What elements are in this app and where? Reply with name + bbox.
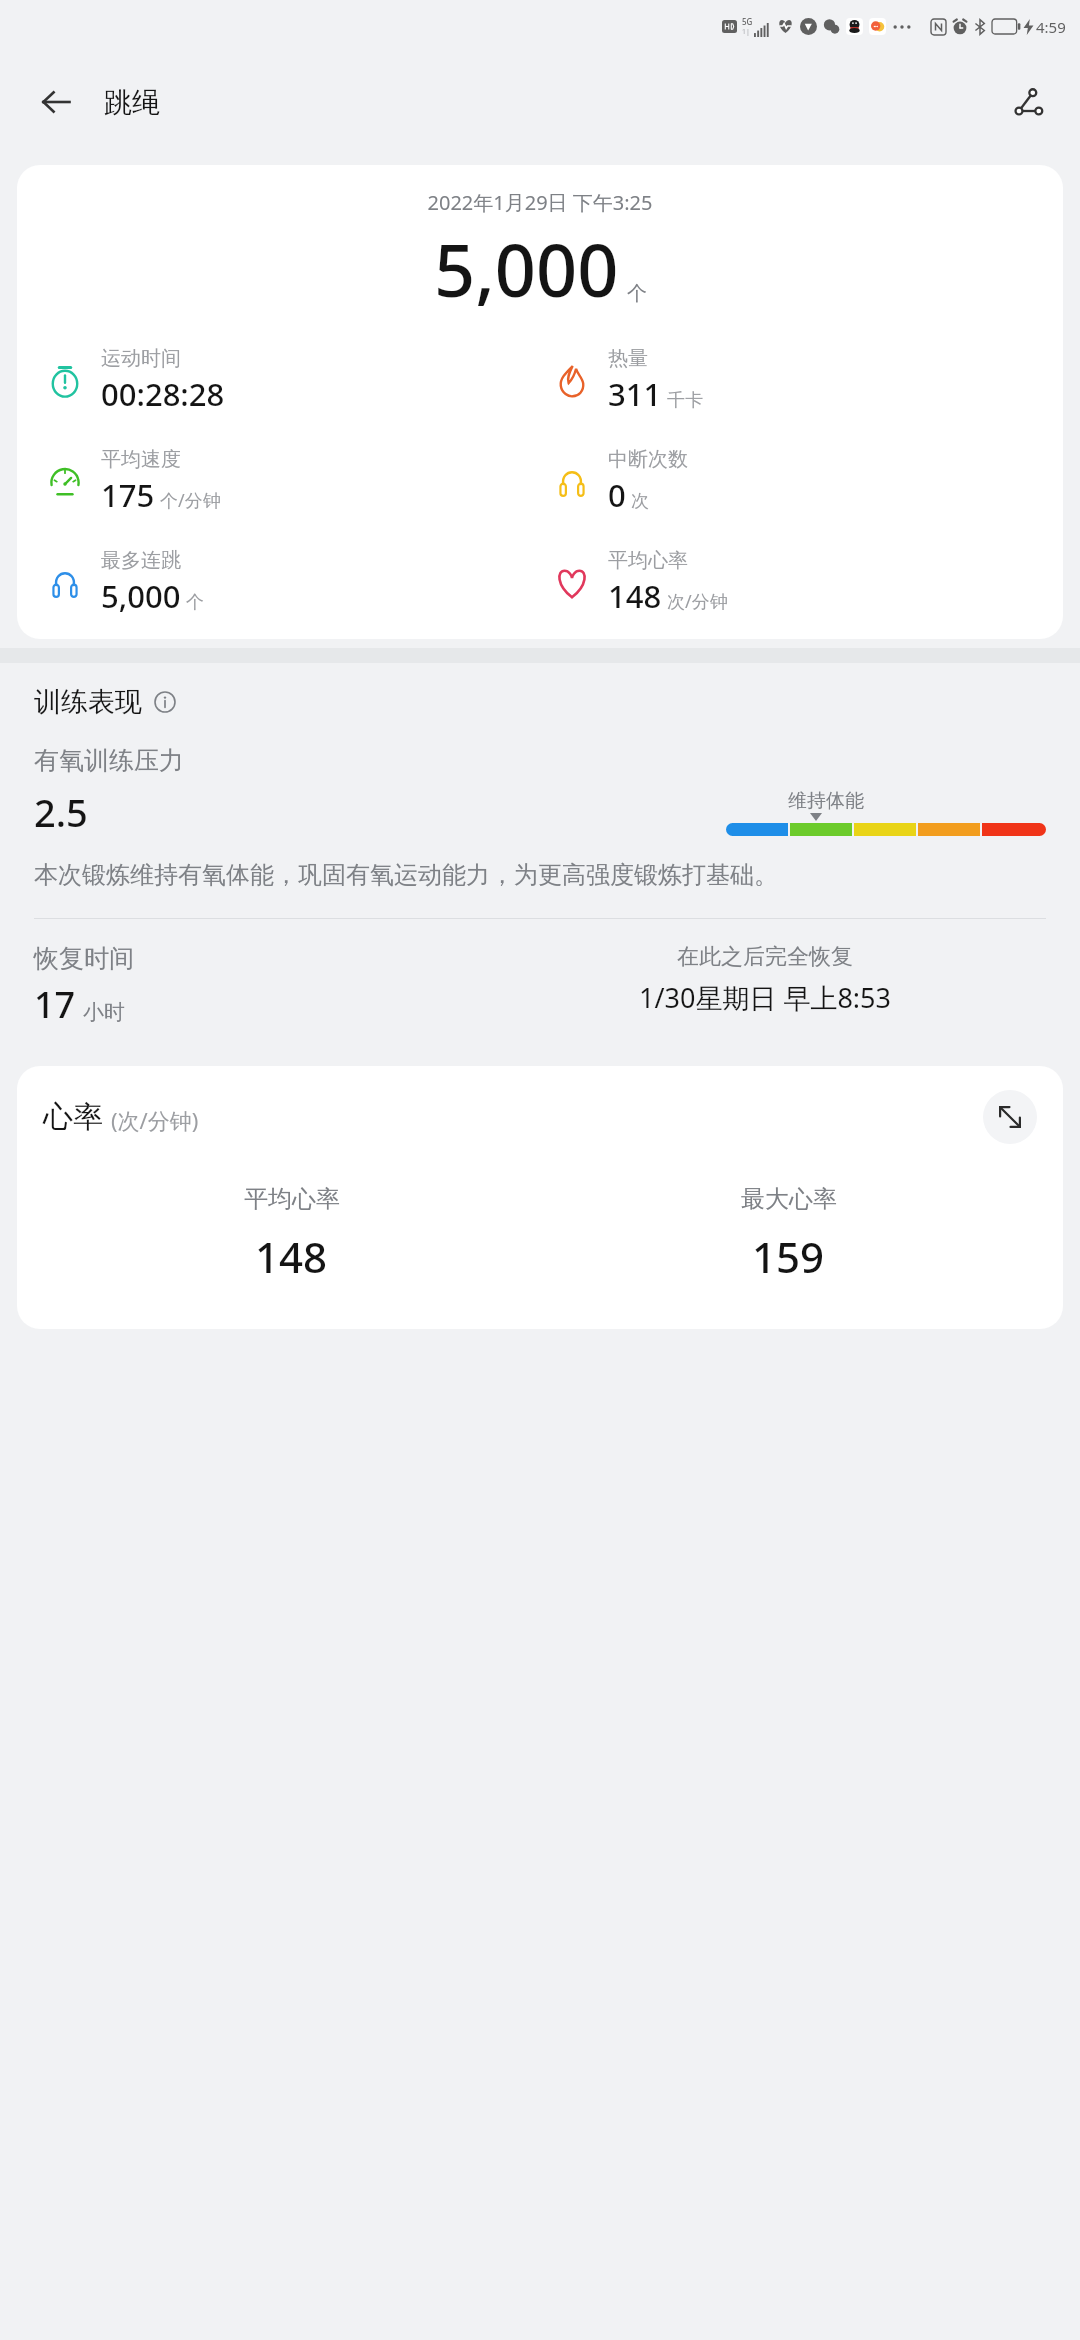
staticText: 4:59 — [1036, 17, 1066, 37]
button[interactable]: Share — [1002, 76, 1054, 128]
staticText: 训练表现 — [34, 685, 142, 719]
button[interactable]: 中断次数 — [550, 447, 1063, 516]
staticText: 次 — [631, 490, 649, 513]
staticText: 2.5 — [34, 786, 88, 838]
staticText: 1| — [742, 27, 750, 37]
button[interactable]: 平均速度 — [43, 447, 540, 516]
staticText: 159 — [752, 1228, 825, 1285]
staticText: 最多连跳 — [101, 548, 181, 573]
staticText: 148 — [255, 1228, 328, 1285]
staticText: 在此之后完全恢复 — [677, 943, 853, 971]
staticText: 5G — [742, 16, 753, 27]
staticText: 148 — [608, 575, 662, 617]
staticText: 311 — [608, 373, 662, 415]
button[interactable]: 最多连跳 — [43, 548, 540, 617]
staticText: 中断次数 — [608, 447, 688, 472]
staticText: 个/分钟 — [160, 488, 221, 513]
staticText: 个 — [186, 591, 204, 614]
staticText: 平均速度 — [101, 447, 181, 472]
button[interactable]: 平均心率 — [550, 548, 1063, 617]
staticText: 维持体能 — [788, 789, 864, 813]
staticText: 00:28:28 — [101, 373, 225, 415]
staticText: 5,000 — [101, 575, 181, 617]
staticText: 175 — [101, 474, 155, 516]
staticText: 1/30星期日 早上8:53 — [639, 979, 891, 1016]
staticText: 有氧训练压力 — [34, 745, 184, 776]
staticText: 恢复时间 — [34, 943, 134, 974]
staticText: 心率 — [43, 1098, 103, 1136]
staticText: 跳绳 — [104, 85, 160, 120]
staticText: (次/分钟) — [111, 1105, 199, 1135]
staticText: 本次锻炼维持有氧体能，巩固有氧运动能力，为更高强度锻炼打基础。 — [34, 860, 778, 890]
staticText: 次/分钟 — [667, 589, 728, 614]
staticText: 运动时间 — [101, 346, 181, 371]
staticText: 平均心率 — [608, 548, 688, 573]
staticText: 5,000 — [434, 220, 619, 318]
staticText: 千卡 — [667, 389, 703, 412]
button[interactable]: 热量 — [550, 346, 1063, 415]
staticText: 最大心率 — [741, 1184, 837, 1214]
button[interactable]: 运动时间 — [43, 346, 540, 415]
button[interactable]: Back — [30, 76, 82, 128]
button[interactable]: Info — [152, 689, 178, 715]
staticText: 热量 — [608, 346, 648, 371]
staticText: 小时 — [83, 999, 125, 1025]
staticText: 17 — [34, 980, 76, 1029]
staticText: 0 — [608, 474, 626, 516]
staticText: 个 — [627, 281, 647, 306]
button[interactable]: Expand — [983, 1090, 1037, 1144]
staticText: 平均心率 — [244, 1184, 340, 1214]
staticText: 2022年1月29日 下午3:25 — [17, 189, 1063, 216]
